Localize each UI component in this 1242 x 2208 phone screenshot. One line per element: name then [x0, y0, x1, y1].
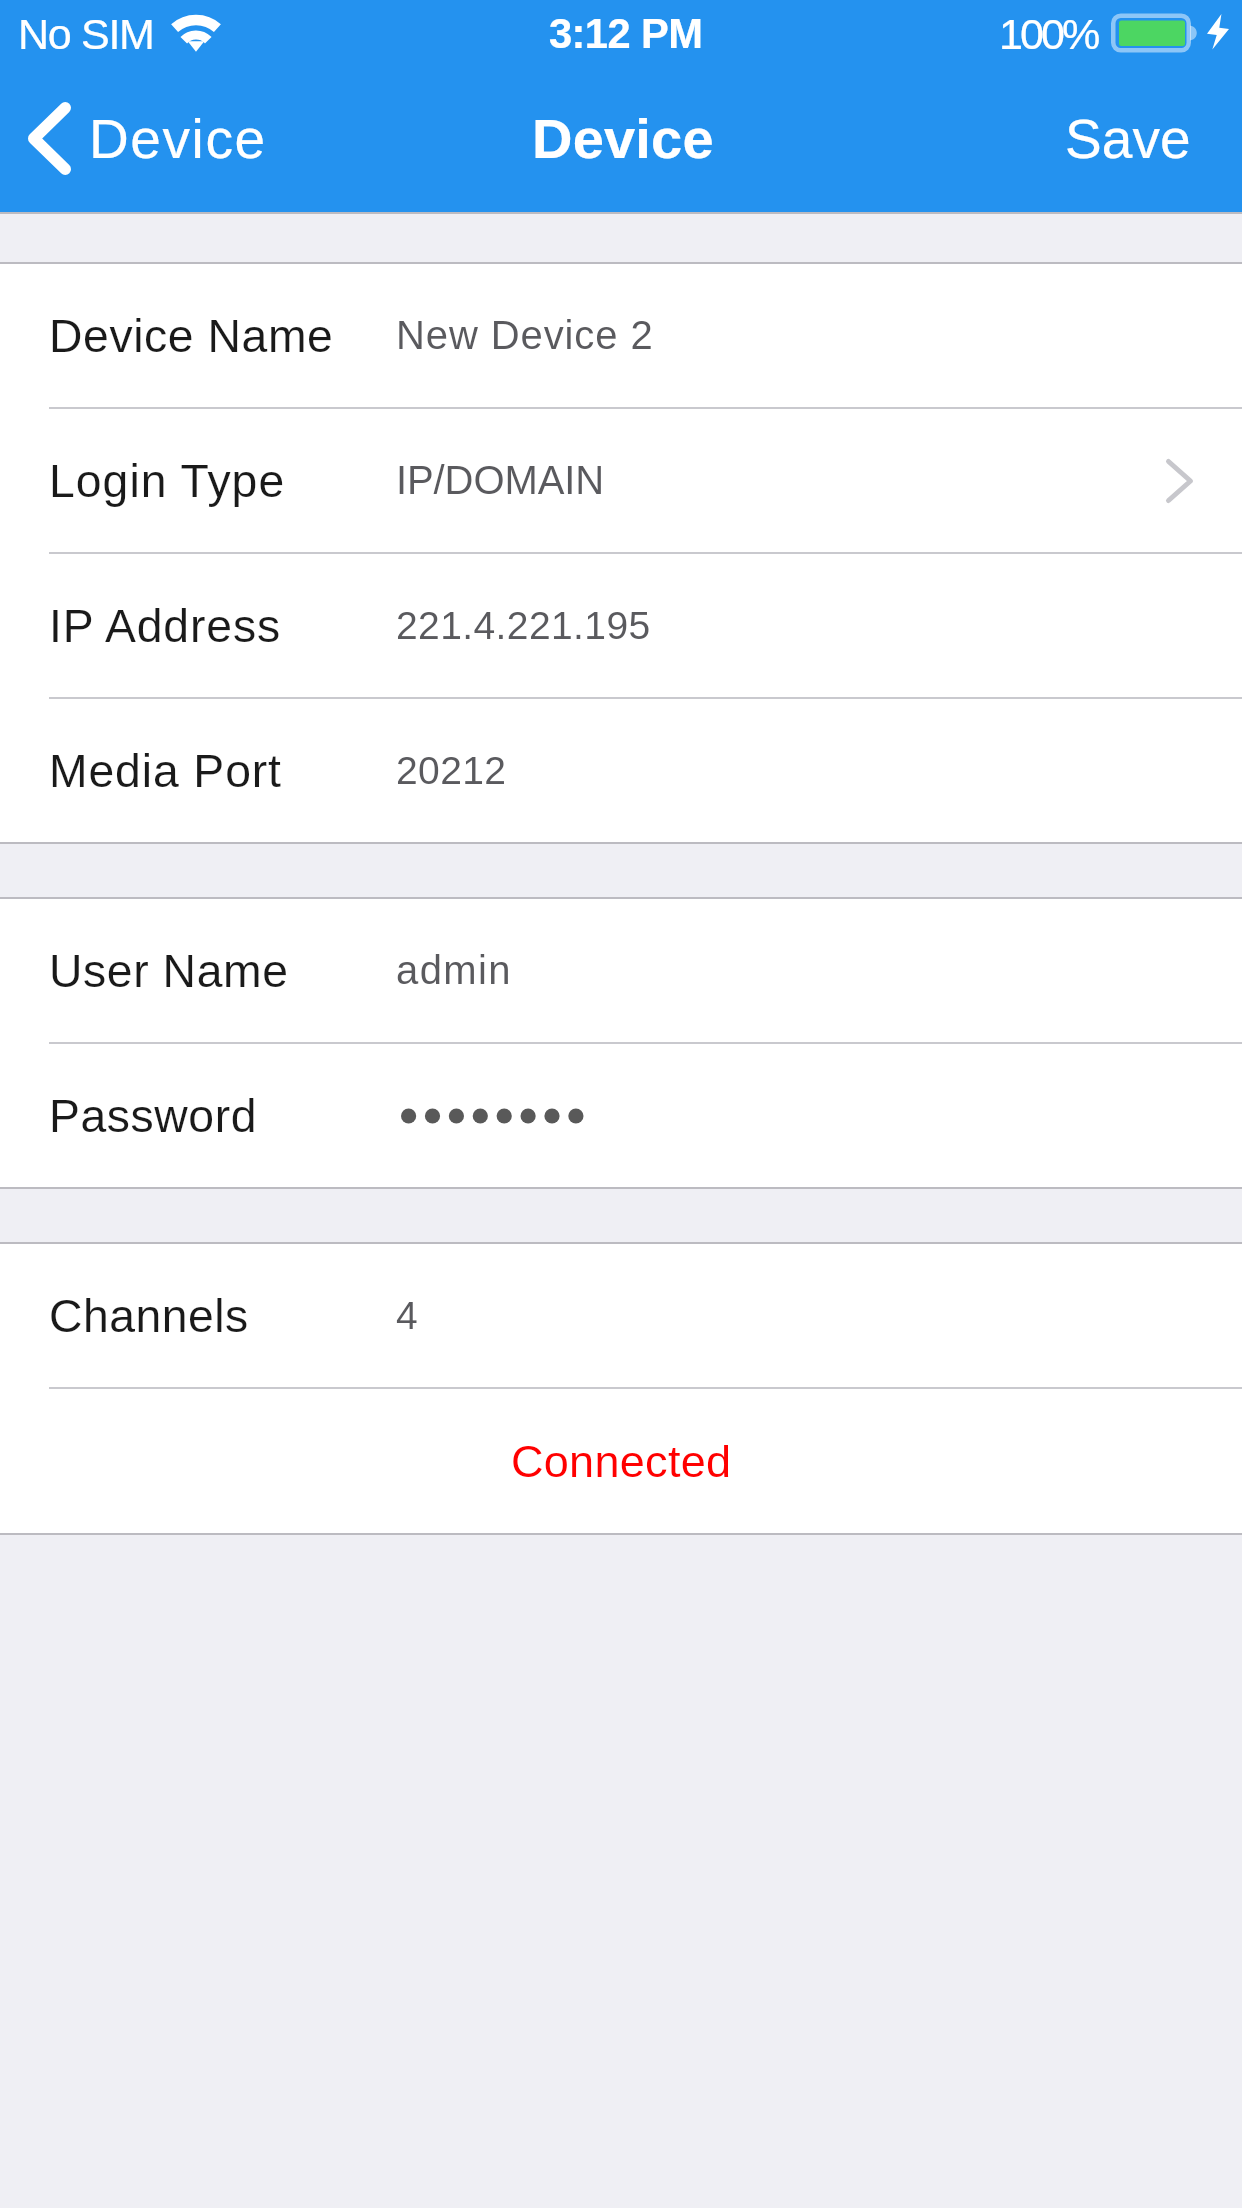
staticText: admin — [396, 948, 512, 993]
staticText: Device — [532, 107, 714, 170]
staticText: Connected — [511, 1436, 732, 1486]
button[interactable]: User Name — [0, 899, 1242, 1042]
staticText: Login Type — [49, 455, 286, 507]
staticText: Device Name — [49, 310, 334, 362]
other: Back — [28, 102, 71, 175]
staticText: 4 — [396, 1294, 419, 1338]
staticText: Save — [1065, 108, 1191, 169]
button[interactable]: Media Port — [0, 699, 1242, 842]
staticText: 221.4.221.195 — [396, 604, 651, 648]
other: Charging — [1207, 14, 1230, 51]
button[interactable]: Channels — [0, 1244, 1242, 1387]
button[interactable]: Save — [1031, 92, 1242, 185]
button[interactable]: IP Address — [0, 554, 1242, 697]
staticText: 100% — [999, 10, 1098, 58]
staticText: IP/DOMAIN — [396, 458, 605, 503]
staticText: New Device 2 — [396, 313, 654, 358]
button[interactable]: Device Name — [0, 264, 1242, 407]
staticText: Device — [89, 108, 267, 169]
staticText: Password — [49, 1090, 258, 1142]
staticText: 20212 — [396, 749, 507, 793]
button[interactable]: Password — [0, 1044, 1242, 1187]
other: Battery full — [1111, 12, 1201, 54]
staticText: Media Port — [49, 745, 282, 797]
button[interactable]: Connected — [0, 1389, 1242, 1533]
staticText: 3:12 PM — [549, 10, 703, 57]
staticText: Channels — [49, 1290, 249, 1342]
other: Wi-Fi signal — [171, 14, 221, 52]
staticText: IP Address — [49, 600, 282, 652]
staticText: No SIM — [18, 10, 154, 58]
staticText: User Name — [49, 945, 289, 997]
button[interactable]: Back — [0, 86, 291, 191]
button[interactable]: Login Type — [0, 409, 1242, 552]
